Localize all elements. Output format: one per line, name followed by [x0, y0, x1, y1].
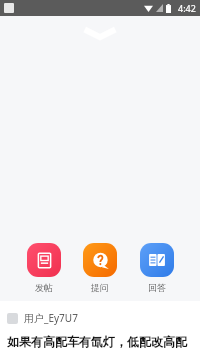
button[interactable]: 发帖	[23, 241, 65, 295]
staticText: 回答	[148, 282, 166, 293]
staticText: 4:42	[178, 2, 196, 14]
button[interactable]: 用户_Ey7U7	[0, 301, 200, 355]
staticText: 提问	[91, 282, 109, 293]
button[interactable]: 回答	[136, 241, 178, 295]
button[interactable]: 提问	[79, 241, 121, 295]
staticText: 用户_Ey7U7	[24, 311, 78, 325]
staticText: 如果有高配车有氙灯，低配改高配氙灯合	[7, 334, 193, 349]
staticText: 发帖	[35, 282, 53, 293]
